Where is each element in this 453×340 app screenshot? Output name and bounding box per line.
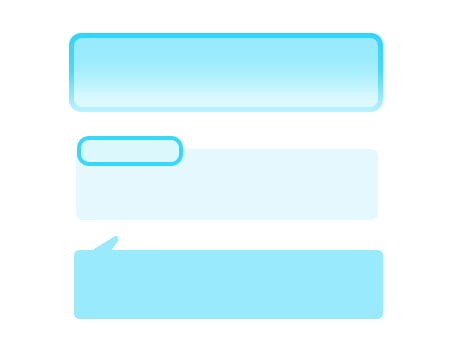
- button[interactable]: Selected message: [69, 33, 383, 112]
- button[interactable]: Quoted label: [77, 136, 183, 166]
- button[interactable]: Incoming message: [74, 234, 383, 319]
